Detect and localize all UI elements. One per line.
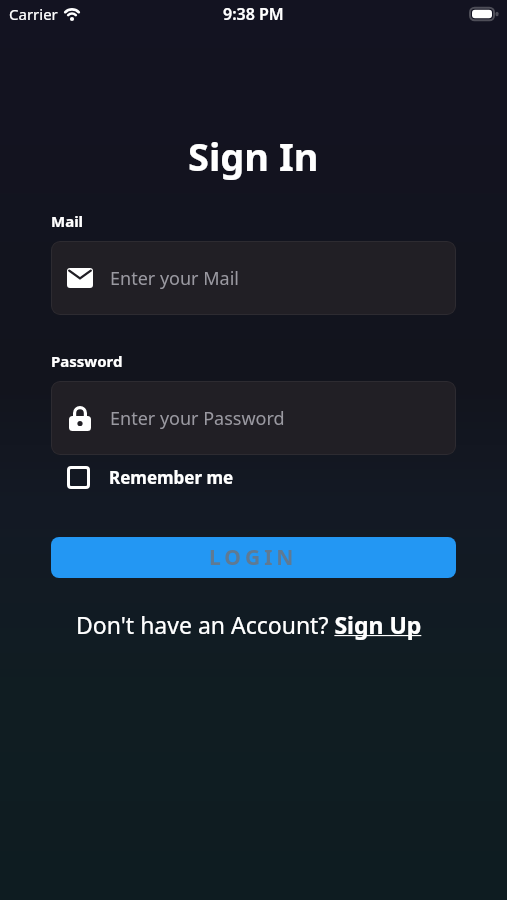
button[interactable]: LOGIN (51, 537, 456, 578)
staticText: Enter your Mail (110, 266, 239, 291)
staticText: Sign In (188, 130, 319, 182)
button[interactable]: Remember me (67, 466, 234, 489)
button[interactable]: Don't have an Account? Sign Up (76, 609, 422, 640)
staticText: 9:38 PM (223, 3, 284, 25)
button[interactable]: Enter your Mail (51, 241, 456, 315)
staticText: Password (51, 351, 123, 371)
staticText: Mail (51, 211, 84, 231)
staticText: LOGIN (209, 543, 298, 572)
button[interactable]: Enter your Password (51, 381, 456, 455)
staticText: Enter your Password (110, 406, 285, 431)
staticText: Carrier (9, 4, 58, 24)
staticText: Remember me (109, 466, 234, 489)
